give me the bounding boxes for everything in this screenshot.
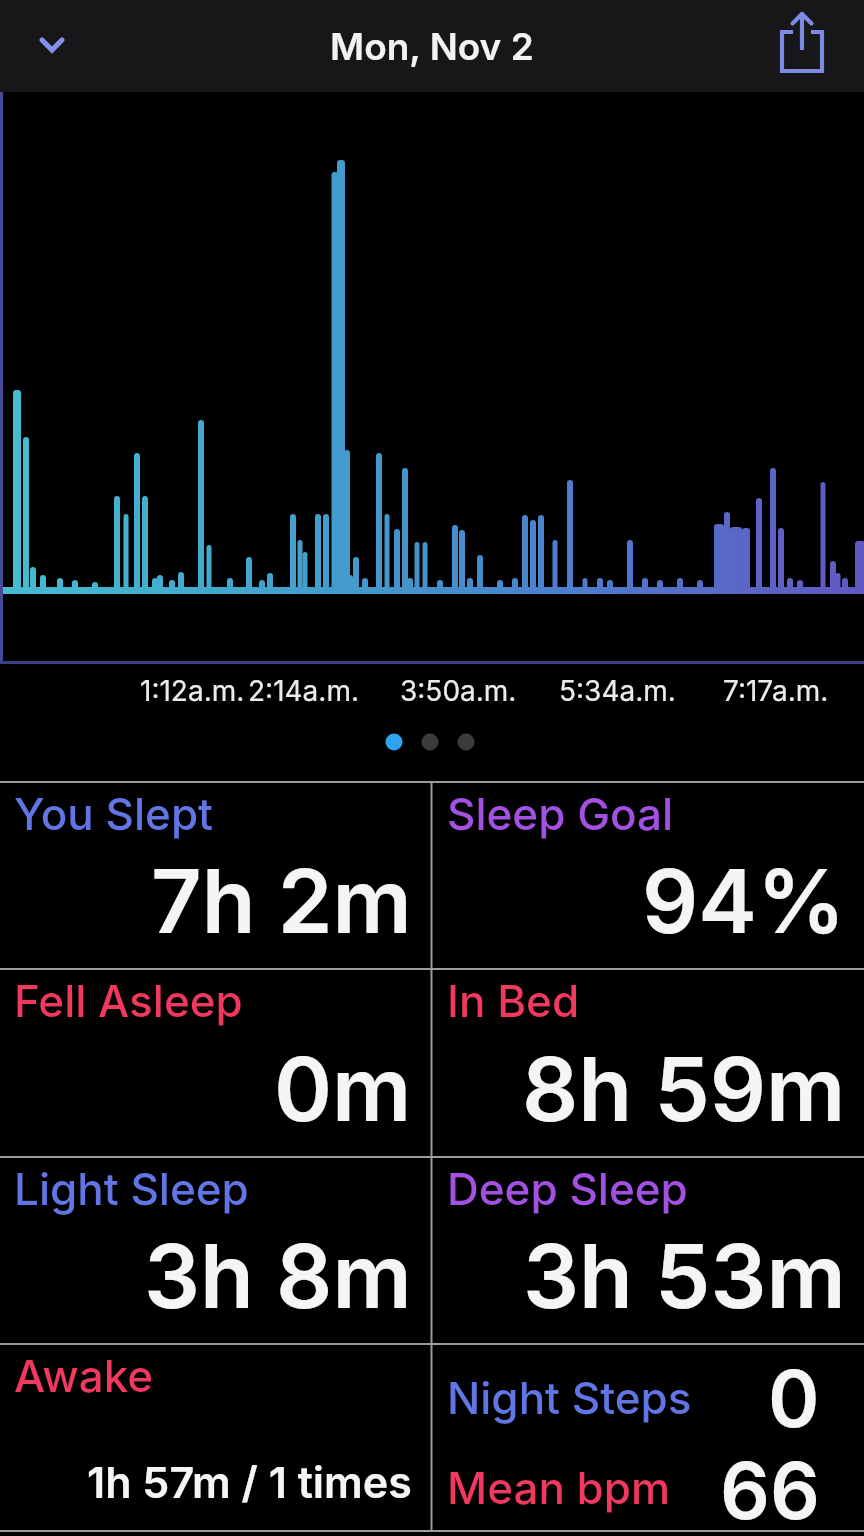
staticText: Fell Asleep — [14, 974, 243, 1027]
staticText: 3:50a.m. — [400, 674, 517, 708]
staticText: Awake — [14, 1349, 154, 1402]
button[interactable]: Fell Asleep — [0, 968, 430, 1156]
staticText: 3h 8m — [144, 1223, 412, 1329]
staticText: 2:14a.m. — [248, 674, 360, 708]
button[interactable]: In Bed — [433, 968, 864, 1156]
staticText: 3h 53m — [523, 1223, 846, 1329]
staticText: 5:34a.m. — [559, 674, 676, 708]
staticText: 0 — [768, 1351, 820, 1445]
staticText: Mean bpm — [447, 1461, 671, 1514]
button[interactable]: You Slept — [0, 781, 430, 968]
staticText: Deep Sleep — [447, 1162, 688, 1215]
staticText: 0m — [274, 1036, 412, 1142]
button[interactable] — [28, 21, 76, 69]
button[interactable]: Deep Sleep — [433, 1156, 864, 1343]
staticText: 94% — [642, 848, 846, 954]
staticText: Light Sleep — [14, 1162, 249, 1215]
staticText: Night Steps — [447, 1371, 692, 1424]
staticText: 1:12a.m. — [140, 674, 245, 708]
staticText: 1h 57m / 1 times — [87, 1456, 412, 1508]
staticText: 8h 59m — [522, 1036, 846, 1142]
staticText: You Slept — [14, 787, 214, 840]
staticText: 7:17a.m. — [723, 674, 829, 708]
button[interactable]: Sleep Goal — [433, 781, 864, 968]
button[interactable]: Light Sleep — [0, 1156, 430, 1343]
button[interactable]: Awake — [0, 1343, 430, 1530]
staticText: Mon, Nov 2 — [330, 24, 534, 69]
button[interactable] — [767, 6, 837, 82]
staticText: In Bed — [447, 974, 580, 1027]
button[interactable]: Night Steps — [433, 1343, 864, 1530]
staticText: 66 — [720, 1443, 820, 1530]
staticText: Sleep Goal — [447, 787, 674, 840]
staticText: 7h 2m — [151, 848, 412, 954]
